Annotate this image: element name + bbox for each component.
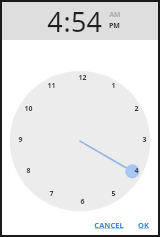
staticText: 1: [111, 81, 116, 91]
button[interactable]: 3: [135, 134, 153, 146]
staticText: 3: [142, 135, 147, 145]
staticText: 9: [18, 135, 23, 145]
button[interactable]: 6: [73, 196, 91, 208]
staticText: 5: [111, 189, 116, 199]
button[interactable]: OK: [135, 218, 152, 232]
staticText: OK: [138, 220, 149, 230]
staticText: 8: [26, 166, 31, 176]
button[interactable]: 1: [104, 80, 122, 92]
staticText: 10: [24, 104, 33, 114]
staticText: 2: [134, 104, 139, 114]
staticText: :: [63, 3, 71, 40]
staticText: 11: [47, 81, 56, 91]
button[interactable]: 9: [11, 134, 29, 146]
button[interactable]: 10: [19, 103, 37, 115]
staticText: 7: [49, 189, 54, 199]
button[interactable]: 8: [19, 165, 37, 177]
button[interactable]: 7: [42, 188, 60, 200]
button[interactable]: 5: [104, 188, 122, 200]
staticText: 6: [80, 197, 85, 207]
button[interactable]: 2: [127, 103, 145, 115]
button[interactable]: 12: [73, 72, 91, 84]
staticText: CANCEL: [94, 220, 124, 230]
button[interactable]: 54: [71, 3, 102, 40]
button[interactable]: Hour selector clock face: [2, 40, 158, 214]
button[interactable]: 4: [127, 165, 145, 177]
staticText: 12: [78, 73, 87, 83]
button[interactable]: 11: [42, 80, 60, 92]
button[interactable]: 4: [47, 3, 63, 40]
staticText: 4: [134, 166, 139, 176]
button[interactable]: PM: [109, 21, 120, 31]
button[interactable]: CANCEL: [91, 218, 127, 232]
button[interactable]: AM: [109, 10, 121, 20]
